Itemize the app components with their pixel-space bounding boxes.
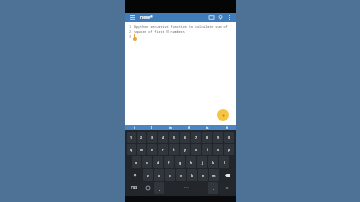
staticText: square of first N numbers	[134, 29, 185, 34]
staticText: b	[191, 173, 194, 178]
staticText: g	[179, 160, 182, 165]
staticText: if	[188, 126, 190, 130]
staticText: ,	[159, 186, 160, 191]
button[interactable]: w	[137, 144, 146, 155]
button[interactable]: f	[164, 156, 174, 168]
staticText: t	[173, 147, 175, 152]
button[interactable]: in	[161, 125, 179, 130]
button[interactable]: Run	[216, 13, 225, 22]
staticText: m	[212, 173, 216, 178]
staticText: 3	[129, 34, 132, 39]
button[interactable]: 1	[127, 132, 136, 143]
button[interactable]: Symbols	[127, 182, 141, 194]
staticText: o	[217, 147, 220, 152]
button[interactable]: r	[158, 144, 168, 155]
button[interactable]: if	[179, 125, 198, 130]
button[interactable]: ,	[154, 182, 164, 194]
button[interactable]: z	[143, 169, 153, 181]
button[interactable]: it	[217, 125, 236, 130]
staticText: 2	[140, 135, 143, 140]
button[interactable]: Open navigation drawer	[128, 13, 137, 22]
button[interactable]: 3	[147, 132, 157, 143]
staticText: l	[224, 160, 225, 165]
button[interactable]: 9	[213, 132, 223, 143]
staticText: in	[169, 126, 172, 130]
staticText: q	[130, 147, 133, 152]
button[interactable]: j	[197, 156, 207, 168]
staticText: 5	[173, 135, 176, 140]
staticText: • • •	[184, 186, 189, 190]
button[interactable]: Shift	[127, 169, 142, 181]
staticText: 8	[206, 135, 209, 140]
staticText: y	[184, 147, 186, 152]
staticText: e	[151, 147, 154, 152]
staticText: s	[146, 160, 148, 165]
staticText: .	[213, 186, 214, 191]
staticText: it	[226, 126, 228, 130]
button[interactable]: 0	[224, 132, 234, 143]
staticText: k	[212, 160, 214, 165]
button[interactable]: is	[198, 125, 217, 130]
button[interactable]: 5	[169, 132, 179, 143]
button[interactable]: a	[132, 156, 141, 168]
button[interactable]: 4	[158, 132, 168, 143]
button[interactable]: 6	[180, 132, 190, 143]
button[interactable]: h	[186, 156, 196, 168]
button[interactable]: Emoji	[142, 182, 153, 194]
staticText: a	[135, 160, 138, 165]
button[interactable]: u	[191, 144, 201, 155]
button[interactable]: k	[208, 156, 218, 168]
button[interactable]: Run code	[217, 109, 229, 121]
staticText: #python recursive function to calculate …	[134, 24, 228, 29]
button[interactable]: Tabs	[207, 13, 216, 22]
staticText: f	[168, 160, 170, 165]
button[interactable]: i	[125, 125, 143, 130]
button[interactable]: 8	[202, 132, 212, 143]
button[interactable]: b	[187, 169, 197, 181]
staticText: is	[206, 126, 209, 130]
staticText: ?123	[131, 186, 138, 190]
button[interactable]: Space	[165, 182, 207, 194]
staticText: p	[228, 147, 231, 152]
button[interactable]: t	[169, 144, 179, 155]
button[interactable]: n	[198, 169, 208, 181]
button[interactable]: q	[127, 144, 136, 155]
button[interactable]: m	[209, 169, 219, 181]
button[interactable]: v	[176, 169, 186, 181]
staticText: j	[202, 160, 203, 165]
button[interactable]: Enter	[219, 182, 234, 194]
staticText: u	[195, 147, 198, 152]
staticText: 9	[217, 135, 220, 140]
button[interactable]: 2	[137, 132, 146, 143]
staticText: v	[180, 173, 182, 178]
button[interactable]: g	[175, 156, 185, 168]
button[interactable]: i	[202, 144, 212, 155]
staticText: n	[202, 173, 205, 178]
button[interactable]: 7	[191, 132, 201, 143]
staticText: 6	[184, 135, 187, 140]
staticText: c	[169, 173, 171, 178]
staticText: i	[134, 126, 135, 130]
button[interactable]: d	[153, 156, 163, 168]
staticText: new*	[140, 14, 207, 21]
staticText: 3	[151, 135, 154, 140]
button[interactable]: o	[213, 144, 223, 155]
button[interactable]: I	[143, 125, 161, 130]
button[interactable]: p	[224, 144, 234, 155]
button[interactable]: l	[219, 156, 229, 168]
staticText: 1	[130, 135, 133, 140]
staticText: r	[162, 147, 164, 152]
staticText: 1	[129, 24, 132, 29]
button[interactable]: x	[154, 169, 164, 181]
button[interactable]: Backspace	[220, 169, 234, 181]
staticText: x	[158, 173, 160, 178]
button[interactable]: e	[147, 144, 157, 155]
button[interactable]: c	[165, 169, 175, 181]
button[interactable]: s	[142, 156, 152, 168]
button[interactable]: More options	[225, 13, 234, 22]
staticText: h	[190, 160, 193, 165]
staticText: z	[147, 173, 149, 178]
button[interactable]: .	[208, 182, 218, 194]
button[interactable]: y	[180, 144, 190, 155]
staticText: I	[151, 126, 153, 130]
